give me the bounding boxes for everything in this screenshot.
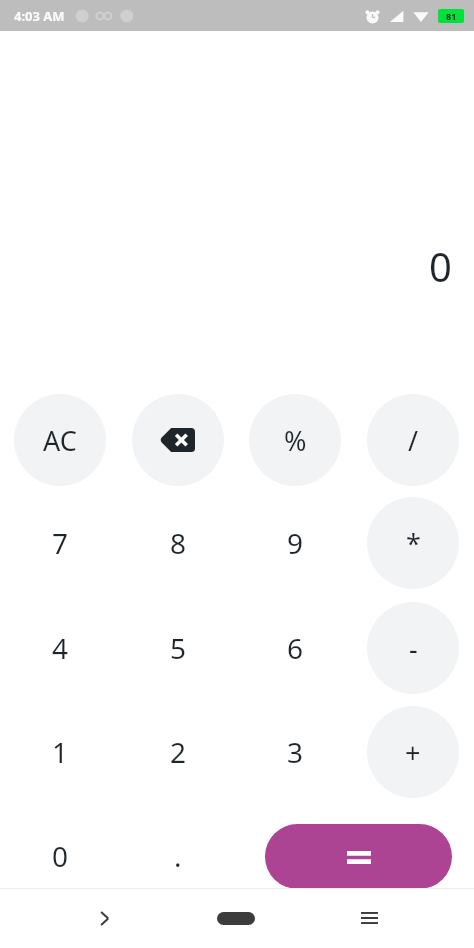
staticText: %: [284, 422, 307, 459]
button[interactable]: Backspace: [132, 394, 224, 486]
staticText: .: [174, 837, 182, 875]
staticText: -: [409, 630, 418, 667]
button[interactable]: 2: [132, 706, 224, 798]
staticText: /: [408, 422, 419, 459]
staticText: 81: [446, 10, 457, 22]
staticText: 8: [170, 524, 187, 562]
button[interactable]: -: [367, 602, 459, 694]
button[interactable]: +: [367, 706, 459, 798]
button[interactable]: %: [249, 394, 341, 486]
button[interactable]: Recent apps: [341, 890, 397, 946]
staticText: 4: [52, 629, 69, 667]
staticText: 1: [52, 733, 69, 771]
staticText: 3: [287, 733, 304, 771]
staticText: 7: [52, 524, 69, 562]
button[interactable]: /: [367, 394, 459, 486]
staticText: 5: [170, 629, 187, 667]
staticText: AC: [43, 422, 77, 459]
staticText: +: [405, 734, 421, 771]
staticText: 0: [52, 837, 69, 875]
staticText: 0: [429, 239, 452, 293]
button[interactable]: 8: [132, 497, 224, 589]
button[interactable]: 1: [14, 706, 106, 798]
button[interactable]: 3: [249, 706, 341, 798]
staticText: 4:03 AM: [14, 7, 65, 25]
staticText: 6: [287, 629, 304, 667]
button[interactable]: 6: [249, 602, 341, 694]
button[interactable]: Equals: [265, 824, 452, 889]
button[interactable]: 0: [14, 810, 106, 902]
button[interactable]: AC: [14, 394, 106, 486]
staticText: 9: [287, 524, 304, 562]
staticText: *: [406, 525, 421, 562]
button[interactable]: 9: [249, 497, 341, 589]
button[interactable]: .: [132, 810, 224, 902]
button[interactable]: Back: [76, 890, 132, 946]
button[interactable]: 5: [132, 602, 224, 694]
button[interactable]: 7: [14, 497, 106, 589]
button[interactable]: *: [367, 497, 459, 589]
button[interactable]: 4: [14, 602, 106, 694]
button[interactable]: Home: [208, 890, 264, 946]
staticText: 2: [170, 733, 187, 771]
